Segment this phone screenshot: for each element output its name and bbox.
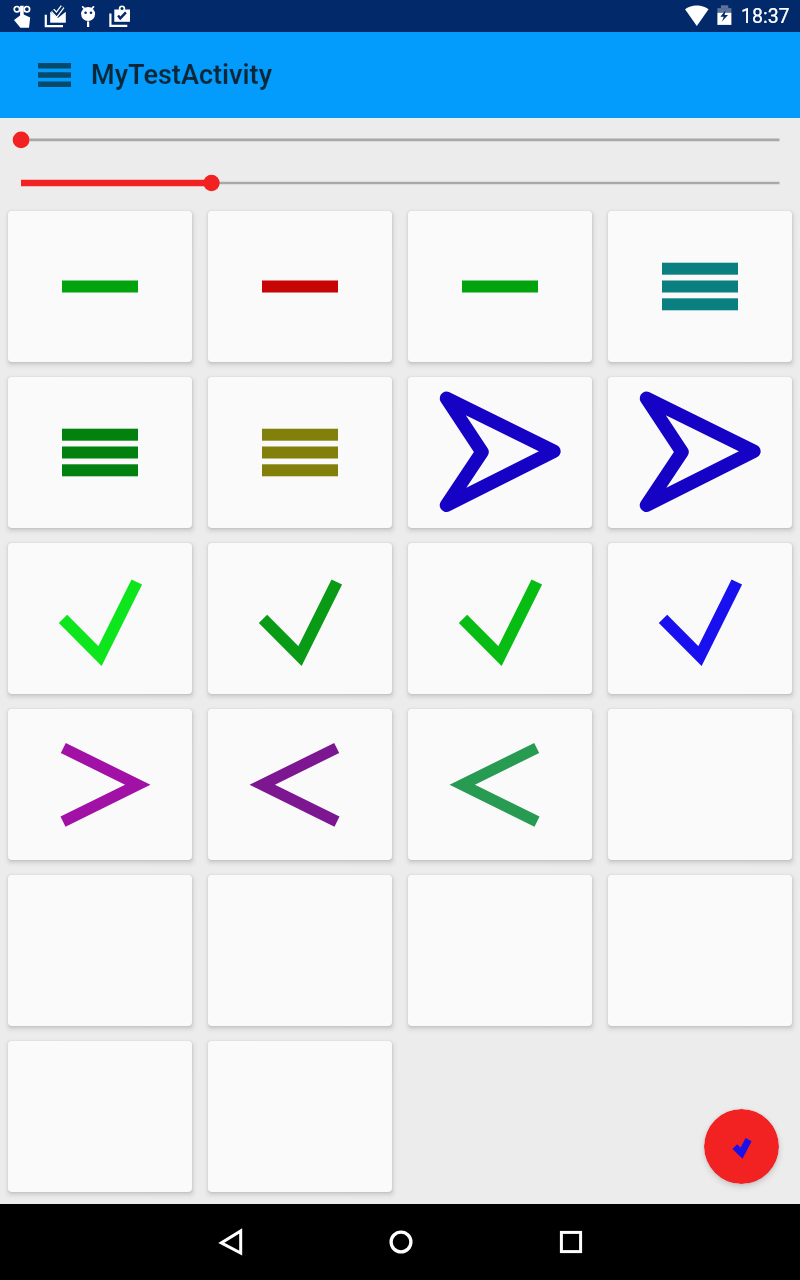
button[interactable]: Grid item (408, 709, 592, 860)
button[interactable]: Grid item (608, 377, 792, 528)
button[interactable]: Grid item (208, 543, 392, 694)
button[interactable]: Grid item (608, 543, 792, 694)
button[interactable]: Grid item (208, 377, 392, 528)
button[interactable]: Confirm (704, 1109, 779, 1184)
button[interactable]: Grid item (408, 543, 592, 694)
button[interactable]: Grid item (8, 543, 192, 694)
button[interactable]: Grid item (608, 211, 792, 362)
button[interactable]: Home (365, 1207, 436, 1277)
staticText: MyTestActivity (91, 59, 273, 91)
button[interactable]: Grid item (8, 709, 192, 860)
button[interactable]: Grid item (408, 377, 592, 528)
button[interactable]: Back (195, 1207, 266, 1277)
button[interactable]: Recents (535, 1207, 606, 1277)
button[interactable]: Menu (28, 49, 80, 101)
staticText: 18:37 (741, 5, 790, 28)
button[interactable]: Grid item (208, 709, 392, 860)
button[interactable]: Grid item (208, 211, 392, 362)
button[interactable]: Grid item (8, 377, 192, 528)
button[interactable]: Grid item (8, 211, 192, 362)
button[interactable]: Grid item (408, 211, 592, 362)
